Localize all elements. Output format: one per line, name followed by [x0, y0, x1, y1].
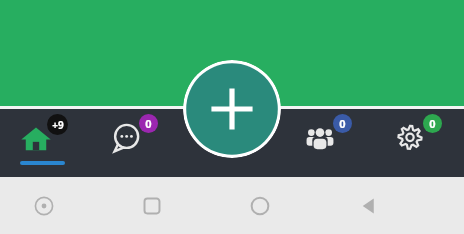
button[interactable]: Assist — [22, 184, 66, 228]
staticText: 0 — [145, 116, 152, 131]
button[interactable]: Messages — [90, 109, 180, 177]
button[interactable]: Back — [346, 184, 390, 228]
staticText: 0 — [339, 116, 346, 131]
staticText: +9 — [52, 118, 64, 132]
button[interactable]: Groups — [284, 109, 374, 177]
button[interactable]: Home — [0, 109, 90, 177]
button[interactable]: Recents — [130, 184, 174, 228]
button[interactable]: Settings — [374, 109, 464, 177]
staticText: 0 — [429, 116, 436, 131]
button[interactable]: Home — [238, 184, 282, 228]
button[interactable]: Add — [183, 60, 281, 158]
